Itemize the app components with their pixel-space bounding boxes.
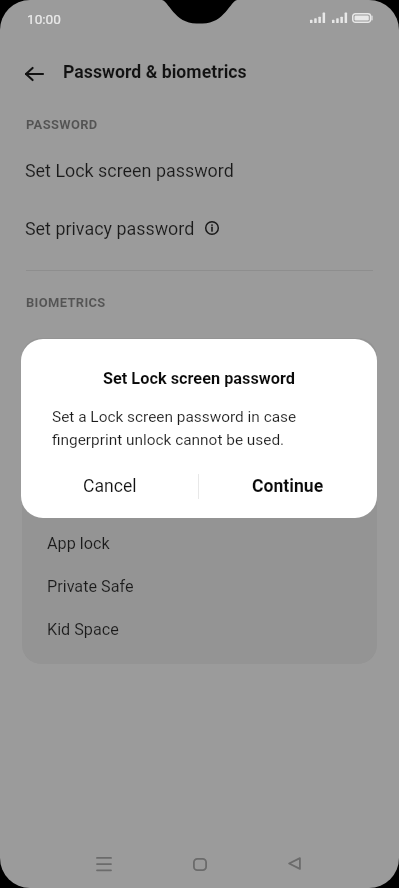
staticText: Set Lock screen password	[21, 369, 377, 388]
staticText: Face	[47, 405, 82, 424]
button[interactable]: Home	[176, 840, 224, 888]
staticText: Continue	[252, 476, 324, 497]
button[interactable]: Continue	[199, 463, 377, 509]
staticText: Private Safe	[47, 577, 134, 596]
staticText: App lock	[47, 534, 110, 553]
button[interactable]: Smart unlock	[22, 479, 377, 522]
button[interactable]: Back	[270, 839, 318, 887]
staticText: BIOMETRICS	[26, 295, 106, 310]
staticText: PASSWORD	[26, 117, 98, 132]
button[interactable]: Private Safe	[22, 565, 377, 608]
staticText: 10:00	[27, 11, 61, 27]
staticText: Set privacy password	[25, 218, 195, 239]
staticText: Smart unlock	[47, 491, 143, 510]
button[interactable]: Face	[22, 393, 377, 436]
button[interactable]: Recent apps	[80, 839, 128, 887]
button[interactable]: Fingerprint	[22, 350, 377, 393]
staticText: Kid Space	[47, 620, 119, 639]
button[interactable]: Set Lock screen password	[0, 142, 399, 198]
staticText: Password & biometrics	[63, 62, 247, 83]
button[interactable]: App lock	[22, 522, 377, 565]
staticText: Fingerprint	[47, 362, 125, 381]
staticText: Set a Lock screen password in case finge…	[52, 408, 352, 449]
button[interactable]: Password	[22, 436, 377, 479]
button[interactable]: Back	[16, 56, 52, 92]
button[interactable]: Cancel	[21, 463, 198, 509]
button[interactable]: Set privacy password	[0, 200, 399, 256]
staticText: Set Lock screen password	[25, 160, 234, 181]
button[interactable]: Kid Space	[22, 608, 377, 651]
staticText: Cancel	[83, 476, 137, 497]
